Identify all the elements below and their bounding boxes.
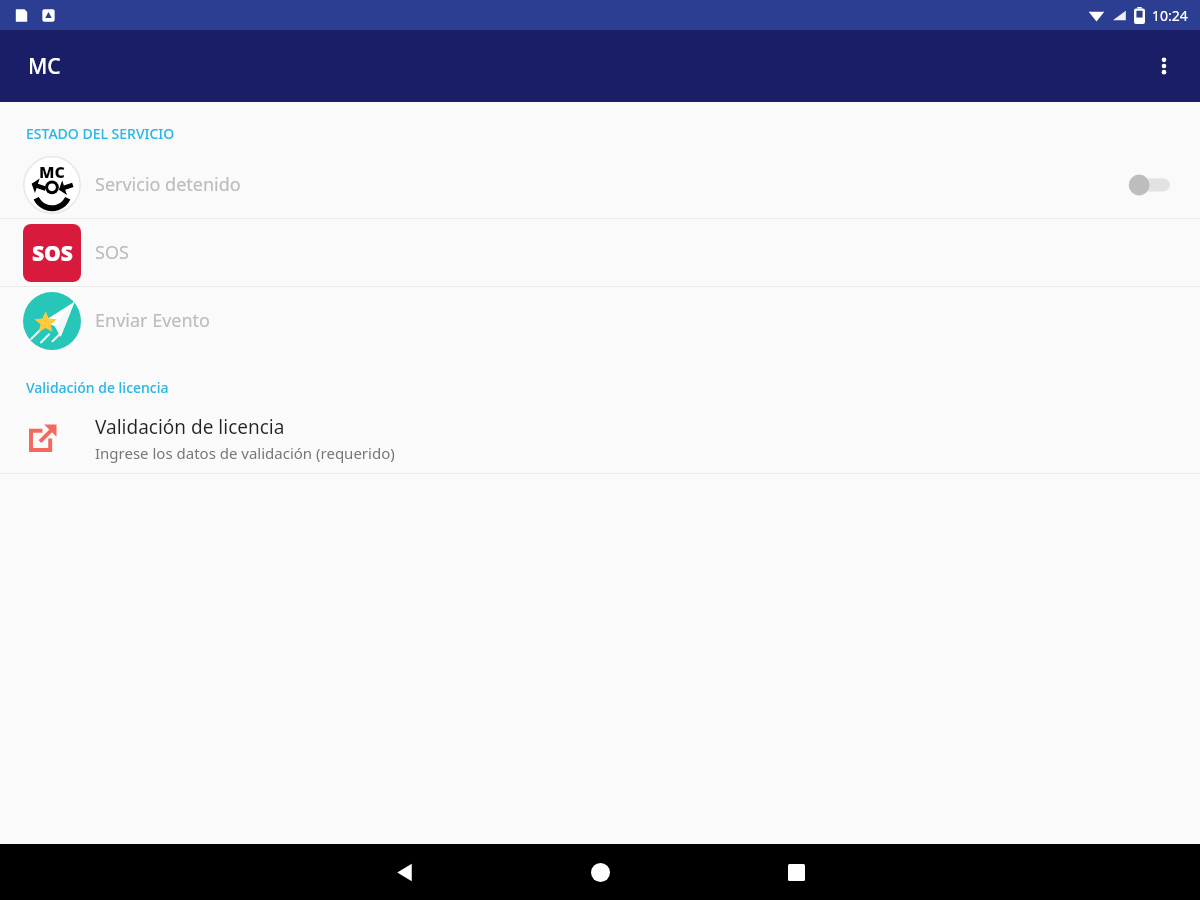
button[interactable]: Toggle service <box>1124 165 1180 205</box>
button[interactable]: SOS <box>0 219 1200 286</box>
staticText: SOS <box>95 240 1180 265</box>
staticText: Enviar Evento <box>95 308 1180 333</box>
button[interactable]: Recent apps <box>772 848 820 896</box>
other: Open license validation <box>28 423 58 453</box>
staticText: ESTADO DEL SERVICIO <box>26 124 175 143</box>
button[interactable]: Home <box>576 848 624 896</box>
staticText: Ingrese los datos de validación (requeri… <box>95 443 395 463</box>
staticText: SOS <box>32 239 73 268</box>
button[interactable]: MC <box>0 151 1200 218</box>
staticText: Servicio detenido <box>95 172 1124 197</box>
staticText: MC <box>28 52 61 81</box>
button[interactable]: More options <box>1140 42 1188 90</box>
staticText: 10:24 <box>1152 6 1188 25</box>
button[interactable]: Open license validation <box>0 403 1200 473</box>
staticText: Validación de licencia <box>95 414 285 440</box>
button[interactable]: Back <box>380 848 428 896</box>
staticText: Validación de licencia <box>26 378 169 397</box>
button[interactable]: Enviar Evento <box>0 287 1200 354</box>
staticText: MC <box>39 161 65 183</box>
